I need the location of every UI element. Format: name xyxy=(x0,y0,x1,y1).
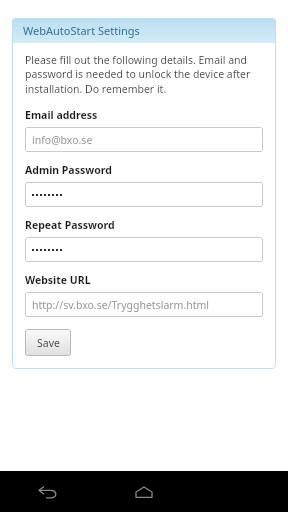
staticText: Admin Password xyxy=(25,163,112,177)
button[interactable]: http://sv.bxo.se/Trygghetslarm.html xyxy=(25,292,263,317)
button[interactable]: Back xyxy=(0,471,96,512)
button[interactable]: Home xyxy=(96,471,192,512)
button[interactable] xyxy=(25,237,263,262)
staticText: WebAutoStart Settings xyxy=(23,23,140,38)
button[interactable] xyxy=(25,182,263,207)
button[interactable]: info@bxo.se xyxy=(25,127,263,152)
staticText: Please fill out the following details. E… xyxy=(25,53,263,96)
staticText: Save xyxy=(37,336,60,350)
button[interactable]: Save xyxy=(25,329,71,356)
staticText: info@bxo.se xyxy=(32,133,93,147)
staticText: Repeat Password xyxy=(25,218,115,232)
staticText: http://sv.bxo.se/Trygghetslarm.html xyxy=(32,298,210,312)
staticText: Website URL xyxy=(25,273,91,287)
staticText: Email address xyxy=(25,108,98,122)
